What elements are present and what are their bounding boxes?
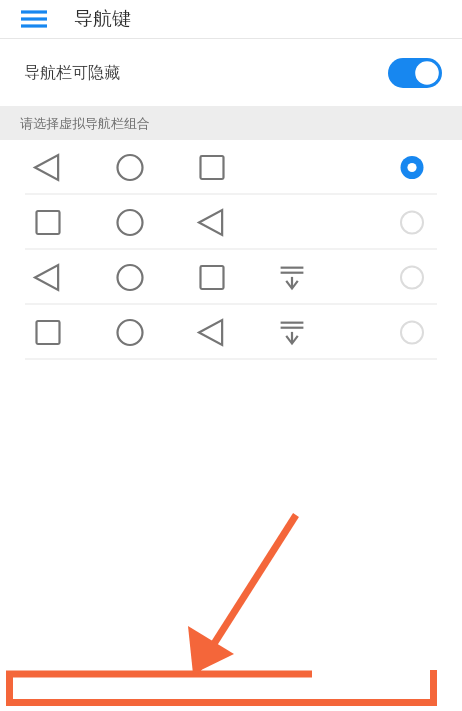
button[interactable]: 导航栏可隐藏 [0,39,462,106]
staticText: 导航栏可隐藏 [24,63,120,83]
button[interactable]: Navigation key combination [0,250,462,305]
button[interactable]: Navigation key combination [0,195,462,250]
button[interactable]: Navigation key combination [0,140,462,195]
staticText: 导航键 [74,7,131,31]
staticText: 请选择虚拟导航栏组合 [20,115,150,131]
button[interactable]: Navigation key combination [0,305,462,360]
button[interactable]: Menu [18,3,50,35]
